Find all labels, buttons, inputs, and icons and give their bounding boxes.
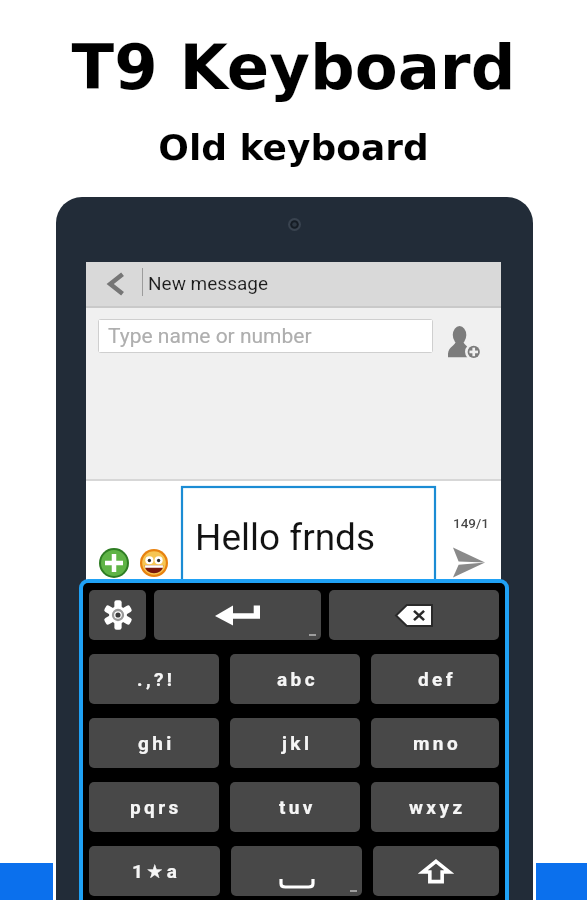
button[interactable] [86, 262, 501, 306]
staticText: New message [148, 272, 269, 294]
staticText: wxyz [409, 796, 466, 818]
other: Space [231, 846, 362, 896]
button[interactable]: Type name or number [98, 319, 433, 353]
staticText: Hello frnds [195, 516, 376, 559]
staticText: jkl [282, 732, 313, 754]
staticText: mno [413, 732, 462, 754]
button[interactable]: Enter [154, 590, 321, 640]
staticText: 1★a [132, 860, 181, 882]
other: Backspace [396, 605, 432, 626]
button[interactable]: .,?! [89, 654, 219, 704]
button[interactable]: wxyz [371, 782, 499, 832]
button[interactable]: Send [452, 547, 485, 578]
button[interactable]: mno [371, 718, 499, 768]
button[interactable]: tuv [230, 782, 360, 832]
staticText: .,?! [137, 668, 176, 690]
button[interactable]: Emoji [140, 549, 168, 577]
staticText: pqrs [130, 796, 182, 818]
button[interactable]: jkl [230, 718, 360, 768]
staticText: abc [277, 668, 318, 690]
other: Shift [422, 860, 450, 883]
staticText: Type name or number [108, 324, 312, 349]
staticText: 149/1 [453, 515, 489, 531]
staticText: Old keyboard [0, 127, 587, 169]
button[interactable]: Backspace [329, 590, 499, 640]
button[interactable]: Shift [373, 846, 499, 896]
button[interactable]: Back [95, 262, 135, 306]
staticText: def [418, 668, 456, 690]
button[interactable]: Add contact [448, 326, 481, 358]
button[interactable]: Settings [89, 590, 146, 640]
staticText: ghi [138, 732, 175, 754]
staticText: T9 Keyboard [0, 31, 587, 104]
staticText: tuv [279, 796, 316, 818]
button[interactable]: def [371, 654, 499, 704]
button[interactable]: abc [230, 654, 360, 704]
button[interactable]: Hello frnds [182, 487, 435, 587]
button[interactable]: Attach [99, 548, 129, 578]
button[interactable]: pqrs [89, 782, 219, 832]
other: Settings [107, 603, 129, 627]
button[interactable]: 1★a [89, 846, 220, 896]
button[interactable]: Space [231, 846, 362, 896]
button[interactable]: ghi [89, 718, 219, 768]
other: Enter [154, 590, 321, 640]
